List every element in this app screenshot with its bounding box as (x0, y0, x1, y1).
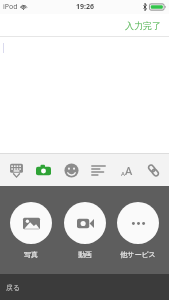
button[interactable]: Keyboard (4, 158, 28, 182)
button[interactable]: Photo (8, 200, 54, 261)
staticText: A (121, 170, 125, 178)
staticText: 19:26 (76, 2, 94, 12)
staticText: 戻る (6, 283, 21, 292)
staticText: 動画 (78, 250, 92, 259)
staticText: 写真 (24, 250, 38, 259)
button[interactable]: Text alignment (86, 158, 110, 182)
staticText: 入力完了 (125, 20, 161, 31)
button[interactable]: Video (62, 200, 108, 261)
button[interactable]: Attach link (141, 158, 165, 182)
staticText: 他サービス (120, 250, 156, 259)
button[interactable]: Camera (31, 158, 55, 182)
button[interactable]: Other services (115, 200, 161, 261)
staticText: A (125, 163, 133, 178)
button[interactable]: 入力完了 (117, 17, 169, 34)
button[interactable]: Font size (114, 158, 138, 182)
button[interactable]: 戻る (0, 279, 27, 296)
staticText: iPod (3, 2, 18, 12)
button[interactable]: Stickers (59, 158, 83, 182)
